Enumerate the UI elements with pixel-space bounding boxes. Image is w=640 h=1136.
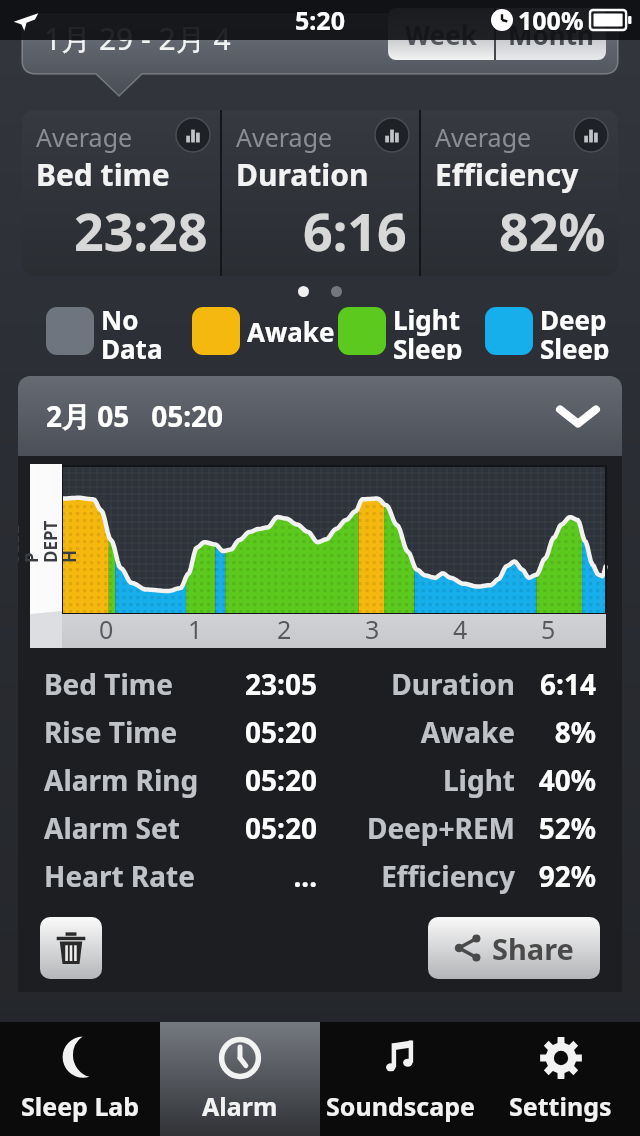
staticText: Share: [492, 929, 574, 968]
button[interactable]: Settings: [480, 1022, 640, 1136]
button[interactable]: Average: [22, 110, 220, 276]
button[interactable]: Awake: [192, 302, 338, 360]
staticText: 1月 29 - 2月 4: [44, 18, 231, 59]
staticText: Settings: [509, 1089, 612, 1123]
staticText: Efficiency: [435, 154, 579, 195]
staticText: Alarm Set: [44, 809, 199, 847]
button[interactable]: Month: [496, 8, 606, 60]
staticText: 52%: [515, 809, 596, 847]
staticText: Light Sleep: [393, 302, 463, 360]
staticText: 2月 05 05:20: [46, 397, 224, 435]
button[interactable]: Heart Rate: [44, 852, 596, 900]
staticText: Average: [236, 120, 333, 154]
button[interactable]: No Data: [46, 302, 192, 360]
staticText: No Data: [101, 302, 163, 360]
staticText: Awake: [247, 314, 335, 349]
staticText: 8%: [515, 713, 596, 751]
staticText: 23:28: [74, 195, 208, 266]
staticText: 1: [188, 612, 203, 646]
staticText: Bed time: [36, 154, 170, 195]
staticText: Month: [508, 17, 594, 52]
staticText: Average: [435, 120, 532, 154]
staticText: Average: [36, 120, 133, 154]
staticText: SLEEP DEPTH: [18, 517, 81, 563]
button[interactable]: Alarm Set: [44, 804, 596, 852]
staticText: Light: [331, 761, 515, 799]
staticText: 23:05: [199, 665, 317, 703]
staticText: 92%: [515, 857, 596, 895]
staticText: Deep Sleep: [540, 302, 610, 360]
button[interactable]: Sleep Lab: [0, 1022, 160, 1136]
staticText: 82%: [499, 195, 606, 266]
button[interactable]: Soundscape: [320, 1022, 480, 1136]
staticText: ...: [199, 857, 317, 895]
staticText: 05:20: [199, 809, 317, 847]
staticText: 4: [453, 612, 468, 646]
staticText: 40%: [515, 761, 596, 799]
button[interactable]: Share: [428, 917, 600, 979]
staticText: 05:20: [199, 713, 317, 751]
staticText: Bed Time: [44, 665, 199, 703]
button[interactable]: Average: [222, 110, 419, 276]
staticText: 6:14: [515, 665, 596, 703]
staticText: Deep+REM: [331, 809, 515, 847]
staticText: 0: [99, 612, 114, 646]
button[interactable]: Delete: [40, 917, 102, 979]
staticText: 05:20: [199, 761, 317, 799]
staticText: Alarm: [202, 1089, 278, 1123]
button[interactable]: Bed Time: [44, 660, 596, 708]
staticText: Duration: [331, 665, 515, 703]
button[interactable]: Light Sleep: [338, 302, 485, 360]
staticText: Sleep Lab: [21, 1089, 140, 1123]
button[interactable]: Deep Sleep: [485, 302, 632, 360]
staticText: 6:16: [303, 195, 407, 266]
staticText: Heart Rate: [44, 857, 199, 895]
button[interactable]: Week: [388, 8, 494, 60]
staticText: 5: [541, 612, 556, 646]
staticText: 5:20: [295, 3, 345, 37]
button[interactable]: Alarm Ring: [44, 756, 596, 804]
staticText: Soundscape: [326, 1089, 475, 1123]
button[interactable]: Rise Time: [44, 708, 596, 756]
staticText: Rise Time: [44, 713, 199, 751]
button[interactable]: 2月 05 05:20: [18, 376, 622, 456]
staticText: 100%: [518, 3, 584, 37]
other: Collapse: [560, 405, 596, 427]
staticText: Awake: [331, 713, 515, 751]
staticText: 3: [365, 612, 380, 646]
staticText: 2: [277, 612, 292, 646]
staticText: Duration: [236, 154, 369, 195]
staticText: Alarm Ring: [44, 761, 199, 799]
button[interactable]: Average: [421, 110, 618, 276]
staticText: Efficiency: [331, 857, 515, 895]
staticText: Week: [405, 17, 477, 52]
button[interactable]: Alarm: [160, 1022, 320, 1136]
